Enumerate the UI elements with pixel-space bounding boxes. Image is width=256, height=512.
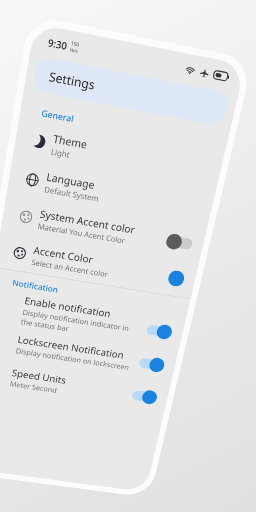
button[interactable]: Speed Units <box>0 413 256 471</box>
staticText: Enable notification <box>24 299 165 321</box>
button[interactable]: System Accent color <box>0 148 256 206</box>
staticText: Material You Acent Color <box>24 180 163 196</box>
staticText: Display notification indicator in the st… <box>24 321 220 353</box>
staticText: Language <box>24 100 99 122</box>
button[interactable]: Lockscreen Notification <box>0 355 256 413</box>
staticText: Light <box>24 64 53 80</box>
button[interactable]: Theme <box>0 32 256 90</box>
staticText: Notification <box>0 275 74 293</box>
staticText: System Accent color <box>24 158 175 180</box>
button[interactable]: Language <box>0 90 256 148</box>
staticText: Select an Accent color <box>24 238 147 254</box>
staticText: Lockscreen Notification <box>24 365 200 387</box>
staticText: Display notification on lockscreen <box>24 387 213 403</box>
staticText: Theme <box>24 42 76 64</box>
staticText: Default System <box>24 122 110 138</box>
staticText: Accent Color <box>24 216 119 238</box>
button[interactable]: Accent Color <box>0 206 256 264</box>
button[interactable]: Enable notification <box>0 297 256 355</box>
